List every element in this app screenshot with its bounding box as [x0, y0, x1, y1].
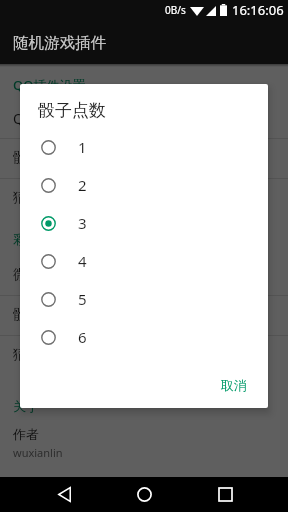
staticText: 骰子点数 [38, 100, 106, 121]
staticText: 5 [78, 289, 87, 309]
staticText: 骰子点数 [13, 306, 69, 324]
button[interactable]: 微信随机骰子 [0, 255, 288, 295]
button[interactable]: 6 [20, 318, 268, 356]
button[interactable]: 5 [20, 280, 268, 318]
staticText: 取消 [221, 377, 247, 393]
staticText: 6 [78, 327, 87, 347]
button[interactable]: 猜拳手势 [0, 335, 288, 375]
staticText: 彩蛋设置 [13, 231, 65, 247]
staticText: QQ插件设置 [13, 76, 86, 94]
button[interactable]: 骰子点数 [0, 295, 288, 335]
staticText: 随机游戏插件 [13, 33, 106, 53]
staticText: 猜拳手势 [13, 189, 69, 207]
button[interactable]: 2 [20, 166, 268, 204]
staticText: 骰子点数 [13, 149, 69, 167]
staticText: 0B/s [165, 3, 186, 17]
staticText: 4 [78, 251, 87, 271]
staticText: 2 [78, 175, 87, 195]
staticText: 1 [78, 137, 87, 157]
button[interactable]: QQ随机骰子 [0, 98, 288, 138]
button[interactable]: 取消 [201, 372, 268, 398]
button[interactable]: 1 [20, 128, 268, 166]
button[interactable]: 4 [20, 242, 268, 280]
staticText: QQ随机骰子 [13, 109, 91, 128]
staticText: 微信随机骰子 [13, 266, 97, 284]
staticText: 作者 [13, 426, 39, 442]
button[interactable]: Back [42, 479, 86, 509]
staticText: 猜拳手势 [13, 346, 69, 364]
button[interactable]: 3 [20, 204, 268, 242]
button[interactable]: 骰子点数 [0, 138, 288, 178]
button[interactable]: Recent apps [203, 479, 247, 509]
staticText: 16:16:06 [232, 1, 284, 19]
button[interactable]: Home [122, 479, 166, 509]
button[interactable]: 猜拳手势 [0, 178, 288, 218]
staticText: wuxianlin [13, 445, 63, 460]
staticText: 3 [78, 213, 87, 233]
staticText: 关于 [13, 398, 39, 414]
